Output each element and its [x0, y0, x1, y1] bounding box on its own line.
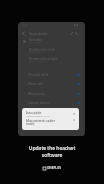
staticText: Double click on right [29, 57, 57, 61]
button[interactable]: Phone calls [18, 80, 85, 87]
staticText: Connect devices [28, 101, 50, 105]
staticText: Update the headset software [0, 145, 104, 158]
staticText: Device details [29, 32, 48, 36]
staticText: 9:41 [22, 24, 28, 28]
staticText: Fill audio while [28, 73, 49, 77]
staticText: Wired audio [28, 92, 45, 96]
staticText: Play / pause [29, 60, 43, 63]
button[interactable]: Auto-update [22, 108, 79, 130]
staticText: ONEPLUS [47, 166, 61, 170]
button[interactable]: Wired audio [18, 90, 85, 97]
button[interactable]: Firmware [18, 37, 85, 46]
staticText: Auto-update [26, 111, 42, 115]
button[interactable]: More options [74, 31, 79, 36]
button[interactable]: Double click on right [18, 56, 85, 65]
button[interactable]: Double click on left [18, 47, 85, 56]
staticText: Voice assist [29, 51, 42, 54]
staticText: Allow automatic update mobile [26, 119, 55, 125]
staticText: ▮▮▮ [74, 24, 79, 27]
staticText: Up to date 181.18 [29, 41, 49, 44]
staticText: Current version 181.18 [26, 115, 50, 118]
button[interactable]: Back [21, 31, 26, 36]
button[interactable]: Fill audio while [18, 71, 85, 78]
staticText: Double click on left [29, 48, 55, 52]
button[interactable]: Search [69, 31, 74, 36]
staticText: Phone calls [28, 82, 44, 86]
staticText: Firmware [29, 38, 42, 42]
button[interactable]: Connect devices [18, 99, 85, 106]
